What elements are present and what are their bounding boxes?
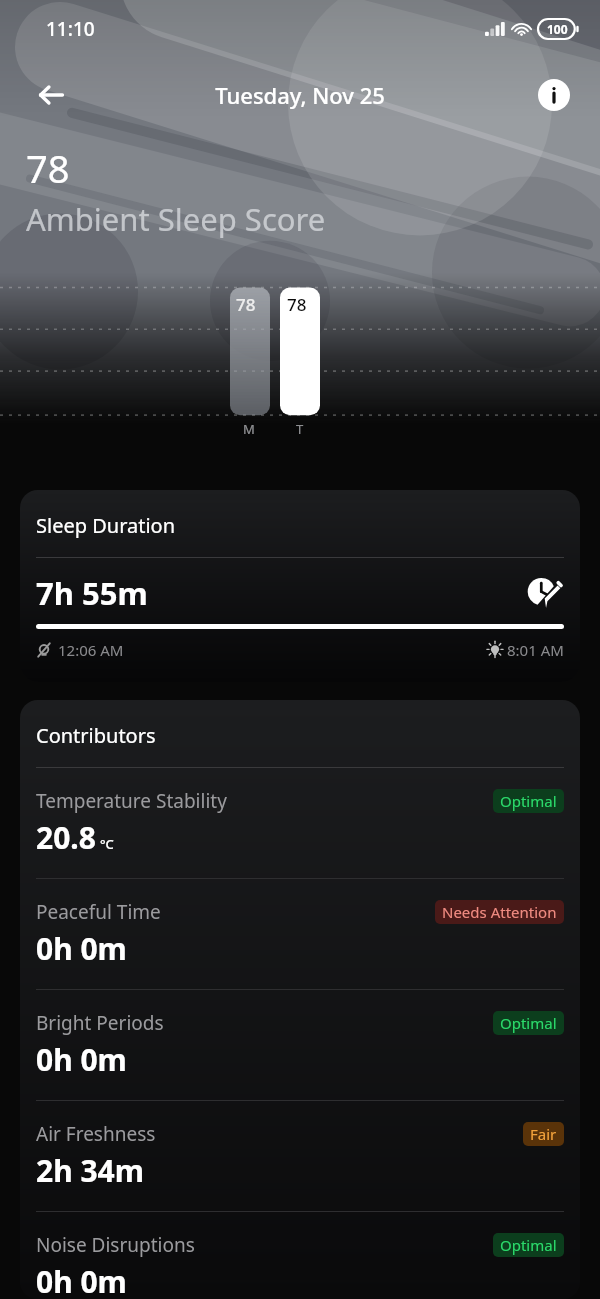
- staticText: Air Freshness: [36, 1121, 156, 1147]
- staticText: Sleep Duration: [36, 512, 176, 539]
- staticText: Temperature Stability: [36, 788, 227, 814]
- staticText: 12:06 AM: [58, 640, 124, 660]
- staticText: T: [296, 420, 304, 438]
- staticText: 100: [547, 21, 568, 37]
- button[interactable]: Air Freshness: [36, 1101, 564, 1211]
- button[interactable]: Info: [532, 73, 576, 117]
- staticText: Ambient Sleep Score: [26, 198, 326, 240]
- staticText: 0h 0m: [36, 928, 127, 969]
- staticText: 0h 0m: [36, 1261, 127, 1299]
- staticText: M: [243, 420, 255, 438]
- staticText: Optimal: [500, 1235, 557, 1255]
- button[interactable]: Edit sleep time: [524, 573, 564, 613]
- staticText: Noise Disruptions: [36, 1232, 195, 1258]
- staticText: 20.8: [36, 817, 96, 858]
- button[interactable]: Peaceful Time: [36, 879, 564, 989]
- staticText: 78: [287, 293, 307, 316]
- staticText: Optimal: [500, 1013, 557, 1033]
- staticText: 78: [26, 142, 70, 194]
- staticText: Peaceful Time: [36, 899, 161, 925]
- button[interactable]: Back: [26, 70, 76, 120]
- staticText: 2h 34m: [36, 1150, 145, 1191]
- staticText: Bright Periods: [36, 1010, 164, 1036]
- staticText: Contributors: [36, 722, 156, 749]
- staticText: 7h 55m: [36, 572, 148, 614]
- staticText: Needs Attention: [442, 902, 557, 922]
- staticText: 8:01 AM: [507, 640, 564, 660]
- button[interactable]: Temperature Stability: [36, 768, 564, 878]
- button[interactable]: Sleep Duration: [20, 490, 580, 682]
- button[interactable]: Bright Periods: [36, 990, 564, 1100]
- staticText: °C: [100, 835, 114, 853]
- staticText: Tuesday, Nov 25: [215, 80, 385, 110]
- button[interactable]: Noise Disruptions: [36, 1212, 564, 1299]
- staticText: Fair: [530, 1124, 557, 1144]
- staticText: 78: [236, 293, 256, 316]
- staticText: 11:10: [46, 16, 95, 42]
- staticText: 0h 0m: [36, 1039, 127, 1080]
- staticText: Optimal: [500, 791, 557, 811]
